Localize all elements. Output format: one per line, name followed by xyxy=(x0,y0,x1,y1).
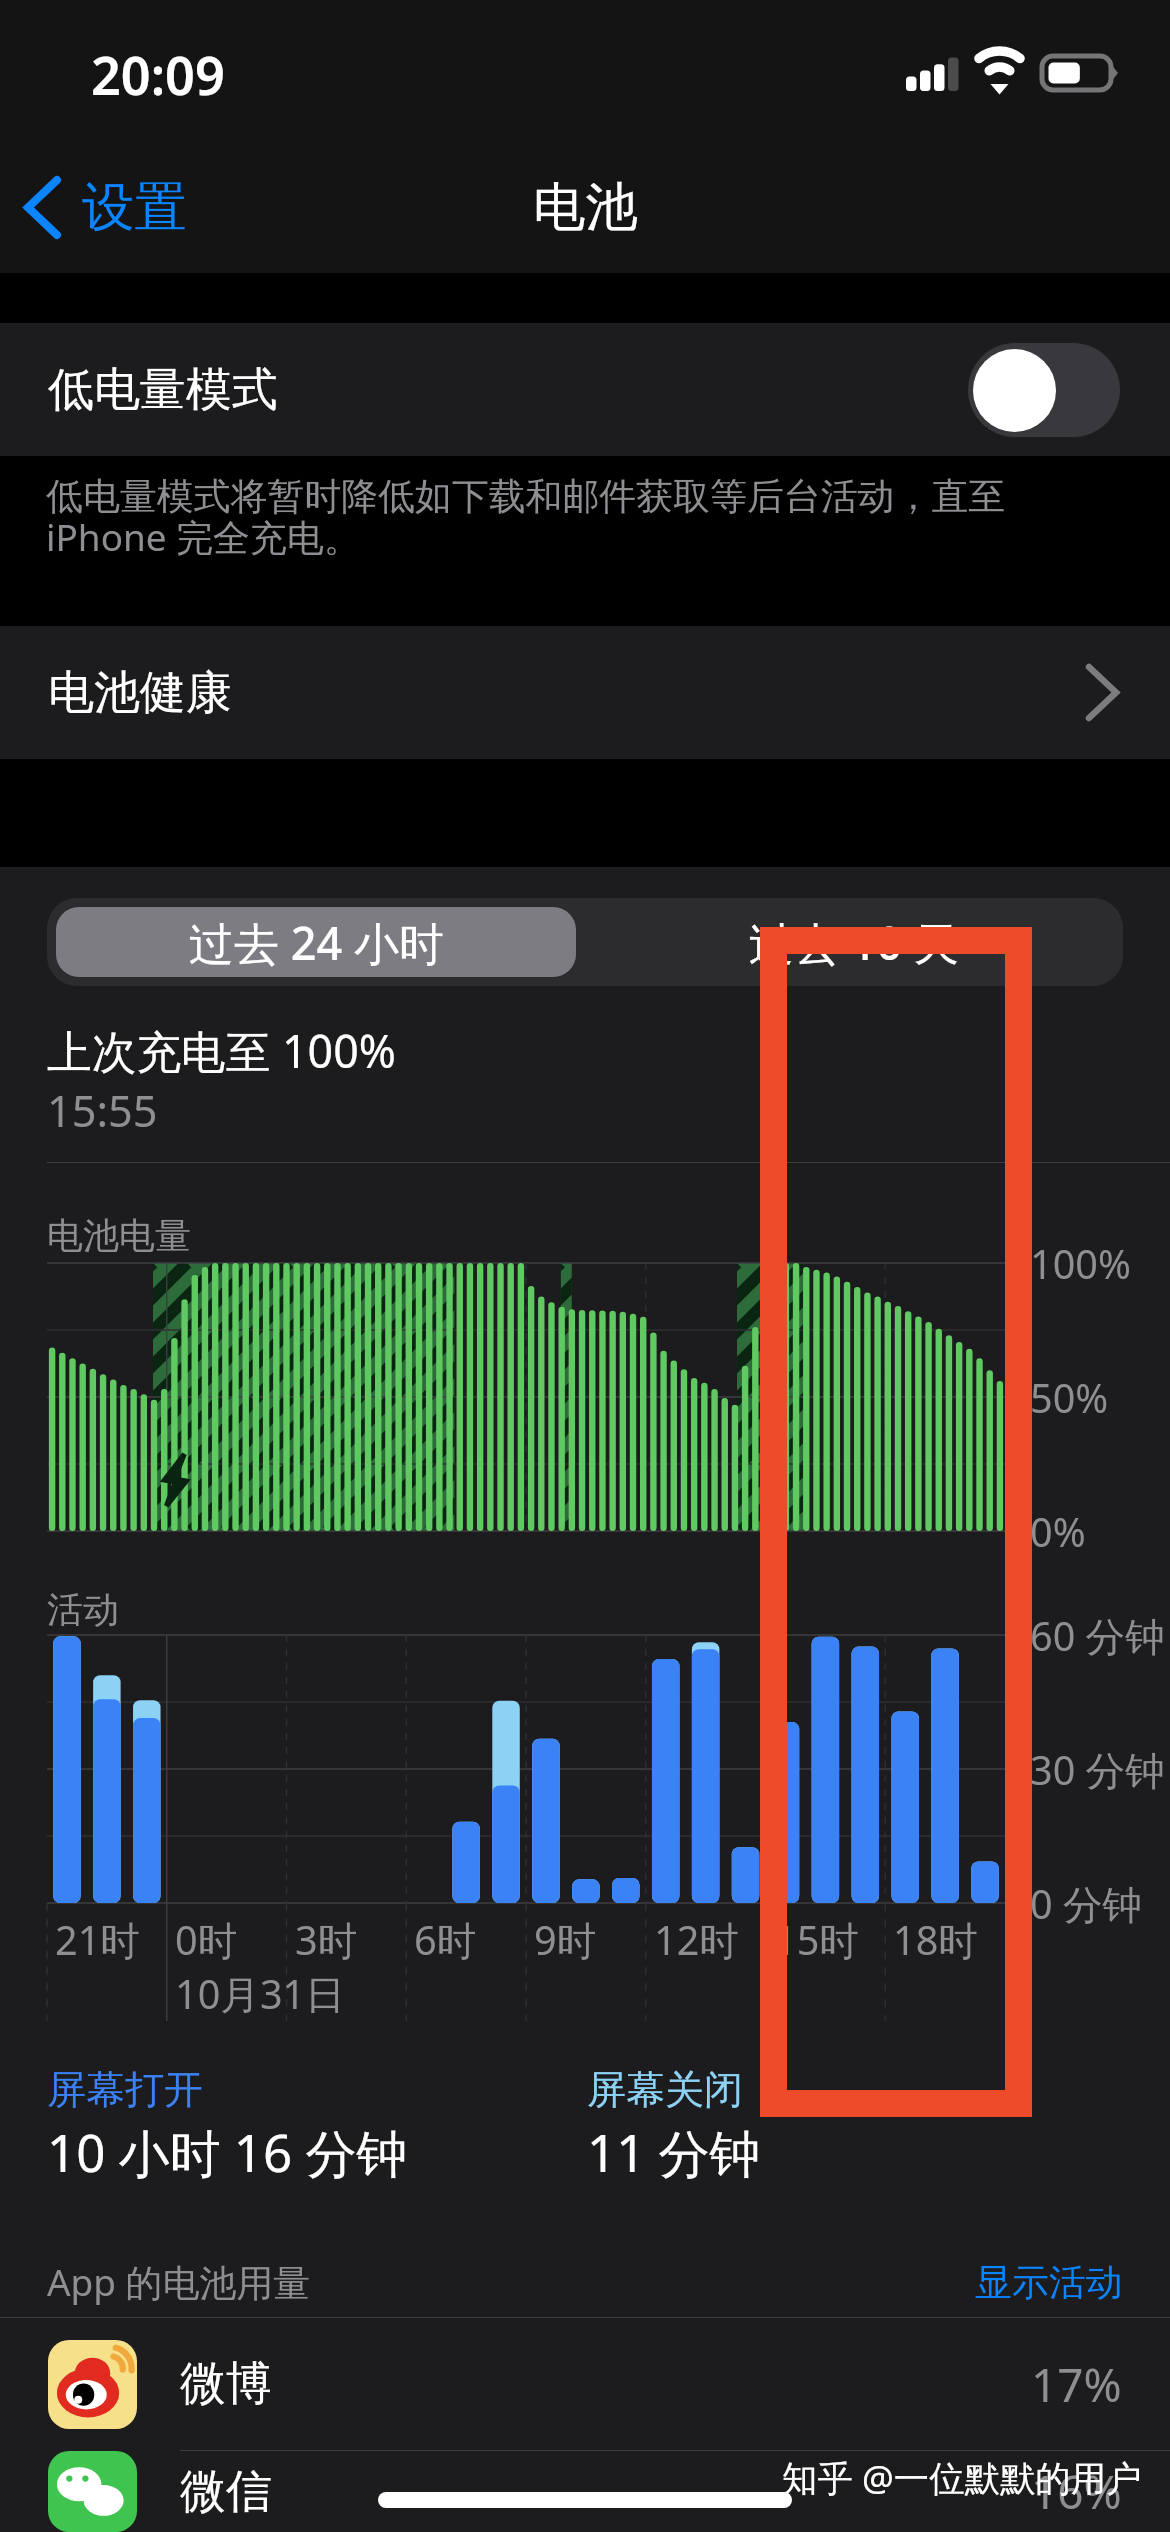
staticText: 18时 xyxy=(893,1913,978,1967)
staticText: 11 分钟 xyxy=(587,2117,761,2187)
staticText: 低电量模式 xyxy=(48,361,278,419)
button[interactable]: 显示活动 xyxy=(975,2259,1123,2305)
staticText: 21时 xyxy=(55,1913,140,1967)
staticText: 知乎 @一位默默的用户 xyxy=(782,2453,1142,2501)
staticText: 电池 xyxy=(533,174,638,240)
button[interactable]: 设置 xyxy=(0,174,211,240)
button[interactable]: Low Power Mode toggle xyxy=(968,343,1120,437)
staticText: 15:55 xyxy=(47,1081,158,1140)
staticText: 低电量模式将暂时降低如下载和邮件获取等后台活动，直至 iPhone 完全充电。 xyxy=(46,473,1006,562)
staticText: 0% xyxy=(1030,1505,1086,1559)
staticText: 50% xyxy=(1030,1371,1109,1425)
staticText: 12时 xyxy=(654,1913,739,1967)
staticText: 微信 xyxy=(180,2463,272,2521)
staticText: 100% xyxy=(1030,1237,1131,1291)
staticText: 过去 10 天 xyxy=(749,912,959,973)
staticText: 17% xyxy=(1031,2353,1122,2416)
staticText: 电池电量 xyxy=(47,1213,191,1258)
staticText: 30 分钟 xyxy=(1030,1743,1165,1797)
staticText: 显示活动 xyxy=(975,2259,1123,2305)
button[interactable]: 过去 10 天 xyxy=(585,898,1123,986)
staticText: 设置 xyxy=(82,174,187,240)
staticText: 15时 xyxy=(774,1913,859,1967)
staticText: 微博 xyxy=(180,2355,272,2413)
staticText: 10月31日 xyxy=(175,1967,345,2021)
staticText: 10 小时 16 分钟 xyxy=(47,2117,408,2187)
staticText: 过去 24 小时 xyxy=(189,912,444,973)
staticText: 0时 xyxy=(175,1913,238,1967)
button[interactable]: 微信 xyxy=(0,2451,1170,2532)
button[interactable]: 微博 xyxy=(0,2318,1170,2450)
staticText: 0 分钟 xyxy=(1030,1877,1143,1931)
staticText: 16% xyxy=(1031,2460,1122,2523)
staticText: 电池健康 xyxy=(48,664,232,722)
button[interactable]: 低电量模式 xyxy=(0,323,1170,456)
staticText: 6时 xyxy=(414,1913,477,1967)
staticText: 活动 xyxy=(47,1587,119,1632)
staticText: 60 分钟 xyxy=(1030,1609,1165,1663)
staticText: 9时 xyxy=(534,1913,597,1967)
staticText: 上次充电至 100% xyxy=(47,1020,396,1081)
staticText: 屏幕关闭 xyxy=(587,2065,743,2114)
button[interactable]: 电池健康 xyxy=(0,626,1170,759)
staticText: App 的电池用量 xyxy=(47,2257,310,2307)
staticText: 20:09 xyxy=(91,39,225,110)
staticText: 3时 xyxy=(295,1913,358,1967)
staticText: 屏幕打开 xyxy=(47,2065,203,2114)
button[interactable]: 过去 24 小时 xyxy=(56,907,576,977)
